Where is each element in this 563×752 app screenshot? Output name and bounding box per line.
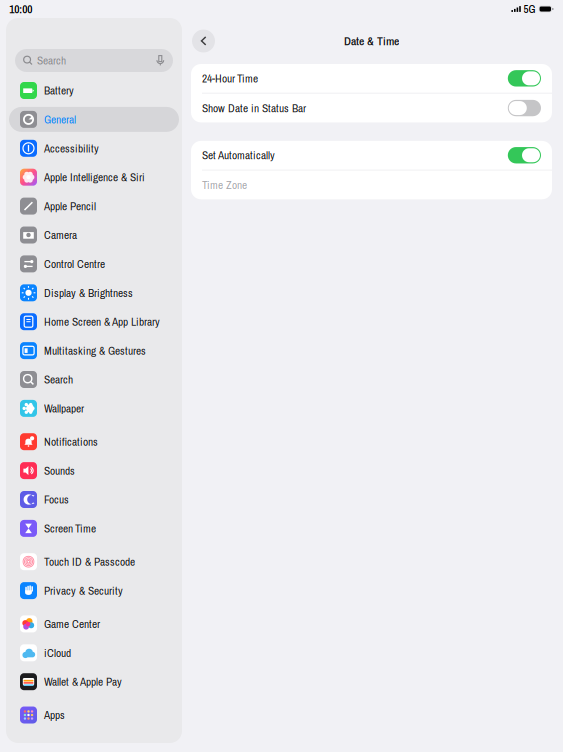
button[interactable]: Camera <box>9 222 179 247</box>
staticText: Battery <box>44 83 74 98</box>
staticText: iCloud <box>44 645 71 660</box>
button[interactable]: General <box>9 107 179 132</box>
button[interactable]: Back <box>192 29 215 52</box>
staticText: Multitasking & Gestures <box>44 343 146 358</box>
staticText: 5G <box>523 2 535 16</box>
staticText: Sounds <box>44 463 75 478</box>
staticText: Accessibility <box>44 141 99 156</box>
button[interactable]: Home Screen & App Library <box>9 309 179 334</box>
button[interactable]: Apps <box>9 702 179 727</box>
button[interactable]: Control Centre <box>9 251 179 276</box>
staticText: 24-Hour Time <box>202 71 258 86</box>
staticText: Set Automatically <box>202 148 275 163</box>
staticText: Wallpaper <box>44 401 84 416</box>
staticText: Display & Brightness <box>44 285 133 300</box>
button[interactable]: Accessibility <box>9 136 179 161</box>
staticText: Wallet & Apple Pay <box>44 674 122 689</box>
staticText: Apple Pencil <box>44 198 96 214</box>
button[interactable]: Focus <box>9 487 179 512</box>
button[interactable]: Sounds <box>9 458 179 483</box>
button[interactable]: Game Center <box>9 611 179 636</box>
button[interactable]: Multitasking & Gestures <box>9 338 179 363</box>
staticText: Show Date in Status Bar <box>202 100 306 116</box>
staticText: Search <box>37 53 66 68</box>
staticText: Focus <box>44 492 69 507</box>
staticText: Home Screen & App Library <box>44 314 160 329</box>
staticText: Date & Time <box>344 33 399 49</box>
button[interactable]: Battery <box>9 78 179 103</box>
button[interactable]: iCloud <box>9 640 179 665</box>
staticText: Screen Time <box>44 521 96 536</box>
staticText: Control Centre <box>44 256 105 272</box>
button[interactable]: Privacy & Security <box>9 578 179 603</box>
button[interactable]: Wallet & Apple Pay <box>9 669 179 694</box>
staticText: Apps <box>44 707 65 723</box>
button[interactable]: Search <box>9 367 179 392</box>
staticText: Search <box>44 372 73 387</box>
staticText: Notifications <box>44 434 98 449</box>
button[interactable]: Apple Intelligence & Siri <box>9 165 179 190</box>
staticText: Game Center <box>44 616 100 632</box>
staticText: General <box>44 112 76 127</box>
staticText: Camera <box>44 227 77 243</box>
button[interactable]: Screen Time <box>9 516 179 541</box>
staticText: 10:00 <box>9 1 32 17</box>
button[interactable]: Wallpaper <box>9 396 179 421</box>
button[interactable]: Notifications <box>9 429 179 454</box>
staticText: Privacy & Security <box>44 583 123 598</box>
staticText: Apple Intelligence & Siri <box>44 170 145 185</box>
button[interactable]: Display & Brightness <box>9 280 179 305</box>
staticText: Touch ID & Passcode <box>44 554 135 569</box>
button[interactable]: Apple Pencil <box>9 194 179 219</box>
button[interactable]: Touch ID & Passcode <box>9 549 179 574</box>
staticText: Time Zone <box>202 177 247 193</box>
